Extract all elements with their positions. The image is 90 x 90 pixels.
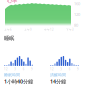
staticText: 160 bbox=[74, 1, 80, 6]
staticText: 心率 bbox=[7, 0, 17, 4]
staticText: 14分鐘 bbox=[50, 78, 66, 85]
staticText: 下午3 bbox=[66, 28, 74, 31]
staticText: 120 bbox=[74, 12, 80, 17]
staticText: 12 bbox=[50, 67, 54, 71]
staticText: 80 bbox=[74, 22, 78, 28]
staticText: 9 bbox=[31, 67, 33, 71]
staticText: 中午12 bbox=[44, 28, 54, 31]
staticText: 3 bbox=[14, 67, 16, 71]
staticText: 6 bbox=[23, 67, 25, 71]
button[interactable]: 12 bbox=[50, 56, 79, 85]
staticText: 9 bbox=[77, 67, 79, 71]
staticText: 清醒時間 bbox=[50, 72, 66, 77]
staticText: 上午6 bbox=[4, 28, 12, 31]
button[interactable]: 12 bbox=[4, 56, 33, 85]
staticText: 6 bbox=[69, 67, 71, 71]
staticText: 睡眠時間 bbox=[4, 72, 20, 77]
staticText: 3 bbox=[60, 67, 62, 71]
staticText: 睡眠 bbox=[4, 35, 14, 42]
staticText: 12 bbox=[4, 67, 8, 71]
staticText: 上午9 bbox=[24, 28, 32, 31]
staticText: 1小時40分鐘 bbox=[4, 78, 33, 85]
